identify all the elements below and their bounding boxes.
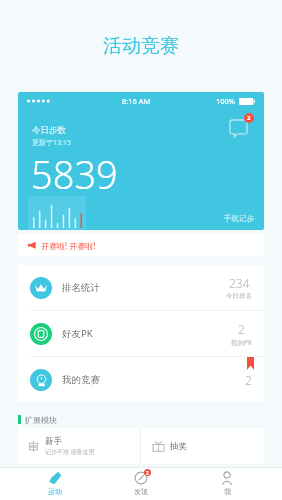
button[interactable]: 排名统计	[18, 265, 264, 310]
button[interactable]: 抽奖	[141, 428, 264, 464]
staticText: 2	[146, 470, 149, 476]
staticText: 100%	[216, 96, 236, 106]
staticText: 2	[245, 372, 252, 388]
button[interactable]: 2	[110, 467, 172, 500]
staticText: 发现	[134, 487, 148, 496]
staticText: 今日排名	[226, 292, 252, 300]
staticText: 活动竞赛	[103, 34, 179, 58]
button[interactable]: 我的竞赛	[18, 357, 264, 402]
staticText: 5839	[31, 148, 118, 200]
button[interactable]: 开赛啦! 开赛啦!	[18, 234, 264, 256]
button[interactable]: 8:16 AM	[18, 92, 264, 230]
staticText: 2	[247, 114, 251, 122]
staticText: 好友PK	[62, 327, 93, 340]
staticText: 更新于13:15	[32, 138, 71, 148]
staticText: 运动	[48, 487, 62, 496]
staticText: 我的竞赛	[62, 374, 100, 386]
button[interactable]: 我	[196, 467, 258, 500]
staticText: 扩展模块	[25, 415, 57, 425]
staticText: 排名统计	[62, 282, 100, 294]
staticText: 记步不准 请看这里	[45, 448, 95, 456]
staticText: 手机记步	[224, 214, 254, 223]
staticText: 新手	[45, 436, 62, 447]
staticText: 我	[224, 487, 231, 496]
button[interactable]: 新手	[18, 428, 140, 464]
button[interactable]: Messages	[230, 113, 254, 137]
button[interactable]: 好友PK	[18, 311, 264, 356]
staticText: 开赛啦! 开赛啦!	[41, 240, 96, 251]
staticText: 我的PK	[231, 338, 252, 347]
staticText: 234	[229, 275, 250, 291]
button[interactable]: 运动	[24, 467, 86, 500]
staticText: 8:16 AM	[122, 96, 151, 106]
staticText: 今日步数	[32, 125, 66, 136]
staticText: 2	[238, 321, 245, 337]
staticText: 抽奖	[170, 441, 187, 452]
